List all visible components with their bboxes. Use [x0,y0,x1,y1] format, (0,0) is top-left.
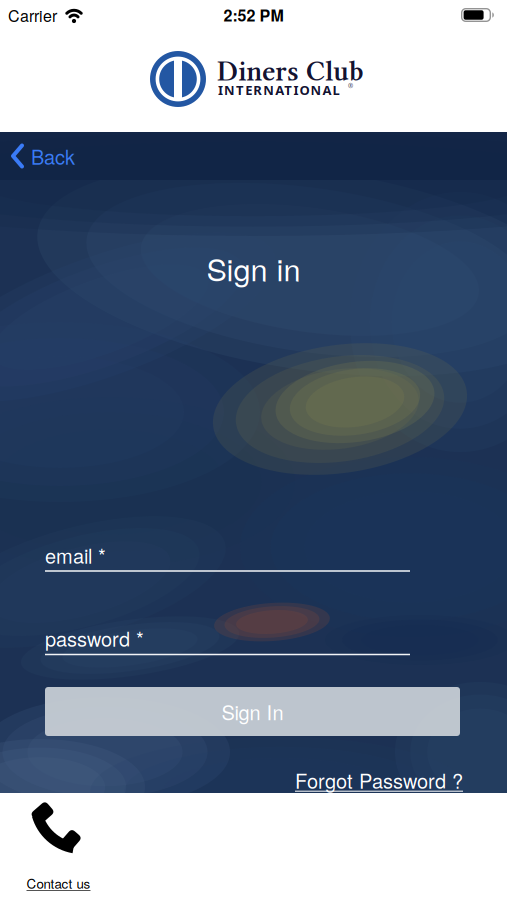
staticText: ® [348,81,354,90]
staticText: email * [45,541,106,569]
button[interactable]: Forgot Password ? [295,766,463,794]
button[interactable]: Sign In [45,687,460,736]
staticText: Diners Club [217,54,364,88]
staticText: Sign in [206,247,300,289]
staticText: Contact us [26,874,90,892]
staticText: 2:52 PM [223,4,283,26]
button[interactable]: Back [10,142,75,170]
staticText: password * [45,624,144,652]
staticText: INTERNATIONAL [218,81,340,99]
button[interactable]: Contact us [26,874,90,892]
staticText: Carrier [8,4,57,26]
staticText: Back [31,142,75,170]
staticText: Sign In [221,697,283,725]
button[interactable]: Call [33,802,79,849]
staticText: Forgot Password ? [295,766,463,794]
